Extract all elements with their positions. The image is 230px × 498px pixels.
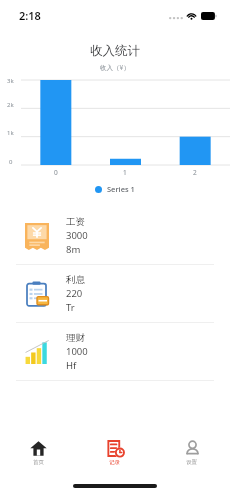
staticText: 2:18 [19,8,41,23]
staticText: Tr [66,301,75,314]
staticText: 理财 [66,332,85,344]
staticText: 1k [7,129,14,137]
staticText: 1 [123,168,127,177]
staticText: 记录 [109,459,120,466]
staticText: 3k [7,77,14,85]
staticText: 1000 [66,345,88,358]
staticText: 设置 [186,459,197,466]
button[interactable]: 设置 [153,430,230,474]
staticText: Series 1 [107,184,135,194]
staticText: 8m [66,243,81,256]
button[interactable]: 工资 [0,207,230,264]
staticText: 220 [66,287,83,300]
button[interactable]: 首页 [0,430,76,474]
staticText: 3000 [66,229,88,242]
staticText: 2 [193,168,197,177]
button[interactable]: 利息 [0,265,230,322]
staticText: 利息 [66,274,85,286]
staticText: 2k [7,101,14,109]
button[interactable]: 记录 [76,430,153,474]
staticText: 0 [9,158,13,166]
staticText: 首页 [33,459,44,466]
staticText: 收入统计 [90,43,140,59]
staticText: 0 [54,168,58,177]
staticText: Hf [66,359,77,372]
staticText: 收入（¥） [100,63,130,72]
staticText: 工资 [66,216,85,228]
button[interactable]: 理财 [0,323,230,380]
